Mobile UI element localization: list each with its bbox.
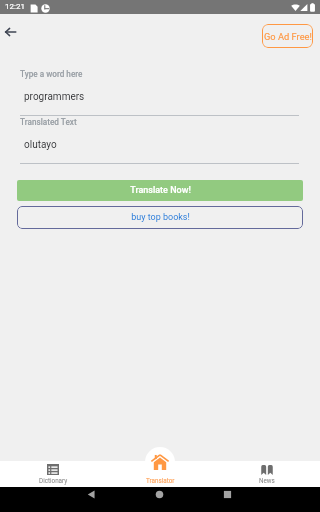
- staticText: Translated Text: [20, 117, 77, 127]
- button[interactable]: Back: [86, 490, 95, 499]
- staticText: olutayo: [24, 139, 57, 151]
- button[interactable]: Back: [0, 22, 20, 42]
- button[interactable]: Go Ad Free!: [262, 24, 313, 48]
- staticText: Translate Now!: [130, 185, 191, 196]
- staticText: buy top books!: [131, 212, 190, 223]
- staticText: Go Ad Free!: [264, 31, 312, 42]
- button[interactable]: Translator: [145, 447, 175, 477]
- button[interactable]: News: [213, 446, 320, 487]
- button[interactable]: Home: [155, 490, 164, 499]
- button[interactable]: Recents: [223, 490, 232, 499]
- button[interactable]: Translate Now!: [17, 180, 303, 201]
- staticText: Dictionary: [39, 477, 68, 484]
- staticText: programmers: [24, 91, 85, 103]
- staticText: 12:21: [5, 2, 25, 11]
- staticText: Type a word here: [20, 69, 83, 79]
- button[interactable]: buy top books!: [17, 206, 303, 229]
- staticText: Translator: [146, 477, 175, 484]
- staticText: News: [259, 477, 275, 484]
- button[interactable]: Dictionary: [0, 446, 106, 487]
